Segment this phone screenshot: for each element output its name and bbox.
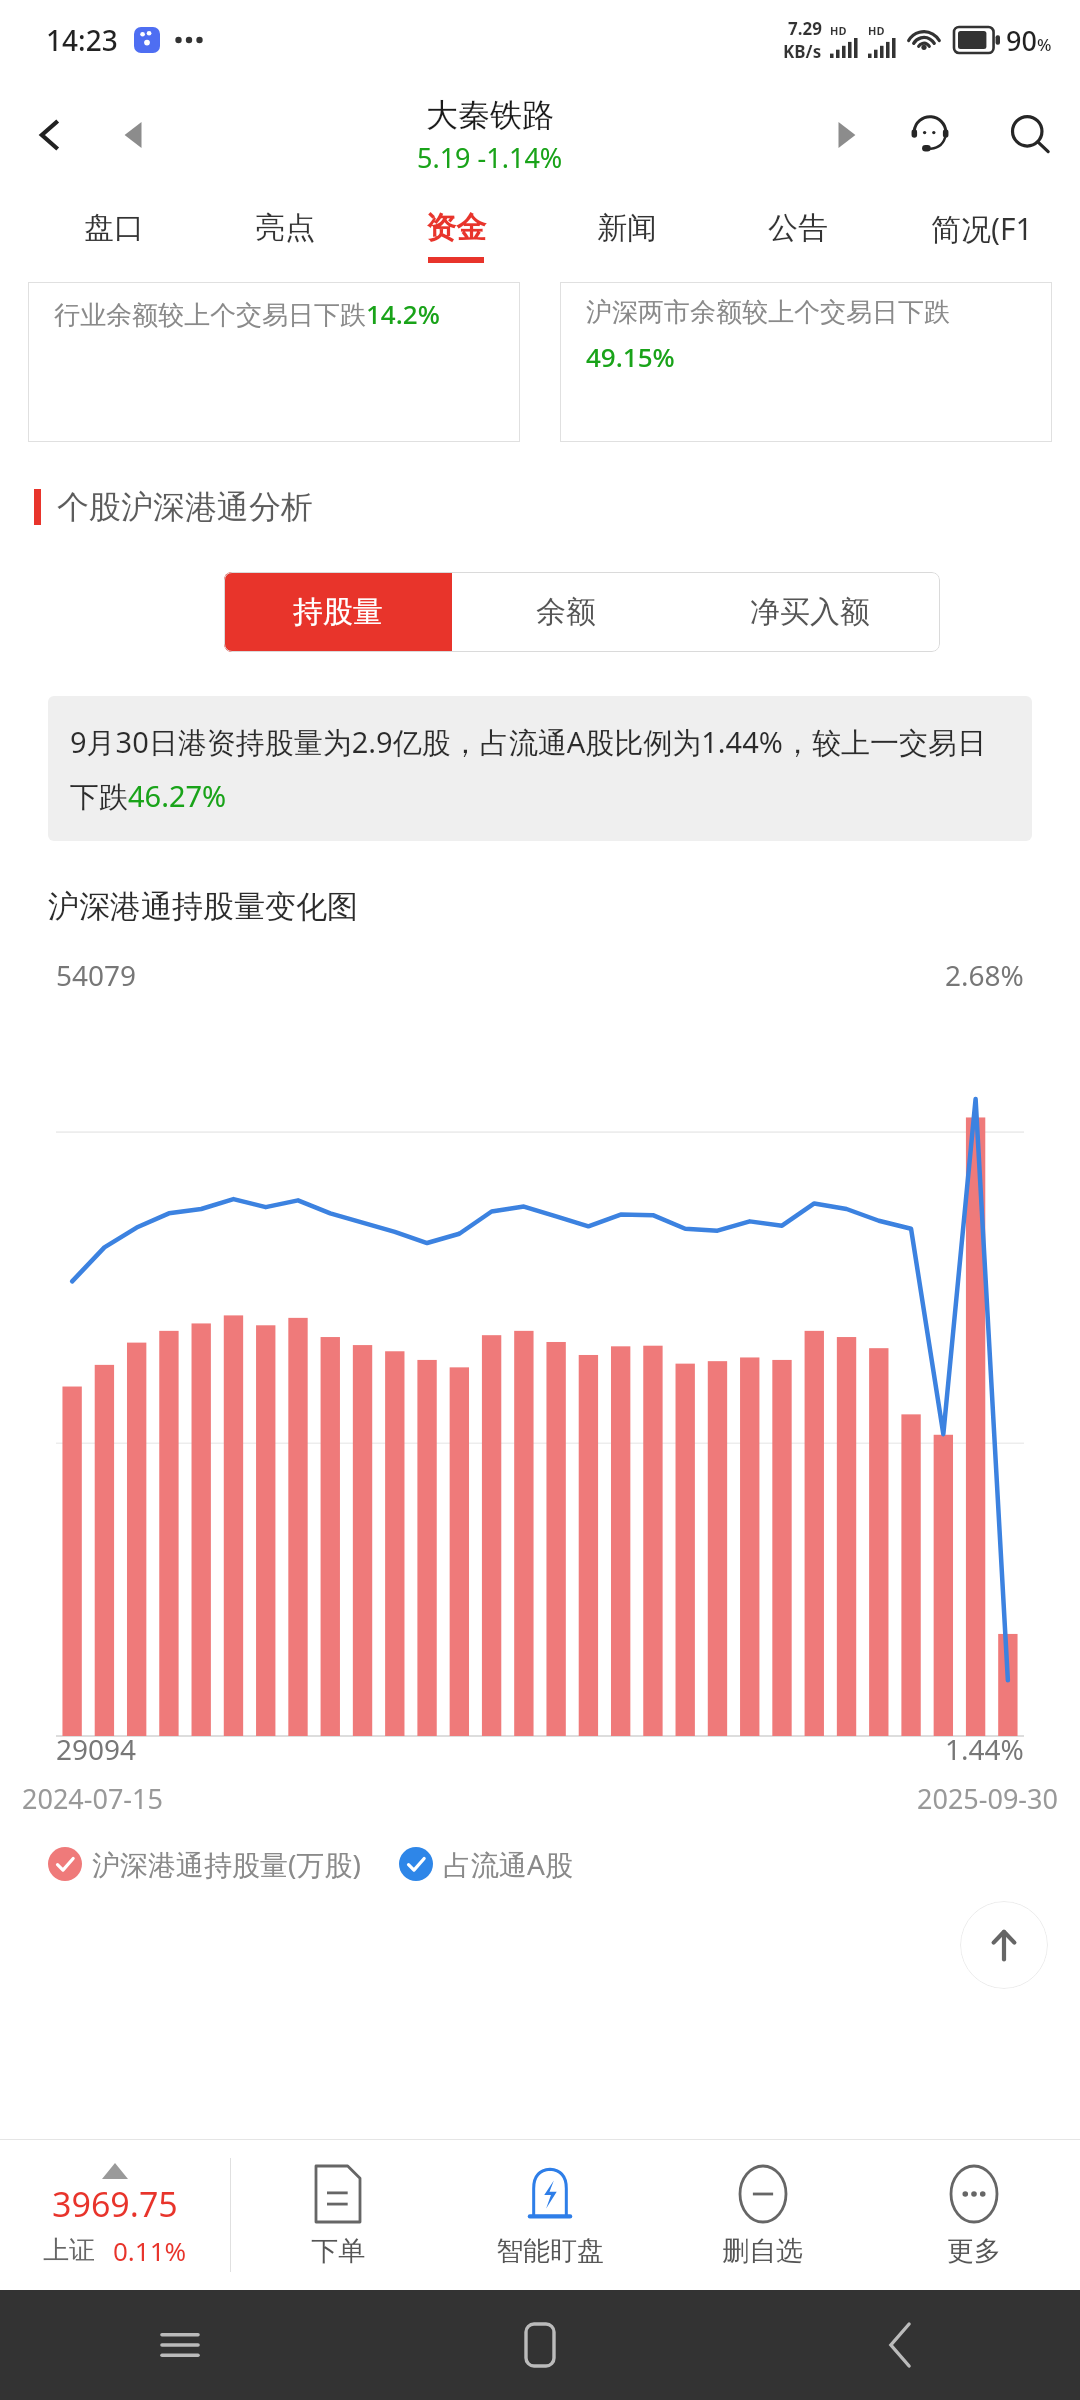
staticText: 资金 xyxy=(426,209,486,247)
staticText: 沪深两市余额较上个交易日下跌49.15% xyxy=(586,296,1038,374)
staticText: 亮点 xyxy=(255,209,315,247)
staticText: 2025-09-30 xyxy=(917,1780,1058,1817)
staticText: 2.68% xyxy=(945,956,1024,994)
staticText: HD xyxy=(868,23,885,38)
staticText: 新闻 xyxy=(597,209,657,247)
button[interactable]: Back xyxy=(0,80,100,190)
button[interactable]: 占流通A股 xyxy=(399,1845,573,1883)
staticText: 3969.75 xyxy=(52,2181,178,2227)
staticText: 14:23 xyxy=(46,21,118,59)
staticText: 1.44% xyxy=(945,1730,1024,1768)
button[interactable]: 资金 xyxy=(370,190,541,282)
staticText: 9月30日港资持股量为2.9亿股，占流通A股比例为1.44%，较上一交易日下跌4… xyxy=(70,722,1010,815)
staticText: 2024-07-15 xyxy=(22,1780,163,1817)
staticText: 智能盯盘 xyxy=(496,2234,604,2268)
staticText: 5.19 -1.14% xyxy=(417,139,563,176)
staticText: 大秦铁路 xyxy=(426,95,554,135)
button[interactable]: 沪深两市余额较上个交易日下跌49.15% xyxy=(560,282,1052,442)
staticText: 90 xyxy=(1006,22,1037,59)
button[interactable]: 亮点 xyxy=(199,190,370,282)
staticText: 0.11% xyxy=(113,2233,187,2268)
staticText: 更多 xyxy=(947,2234,1001,2268)
button[interactable]: 余额 xyxy=(452,572,679,652)
staticText: 净买入额 xyxy=(750,593,870,631)
button[interactable]: 下单 xyxy=(231,2140,444,2290)
button[interactable]: Next stock xyxy=(810,100,880,170)
staticText: 删自选 xyxy=(722,2234,803,2268)
button[interactable]: 3969.75 xyxy=(0,2140,230,2290)
button[interactable]: 智能盯盘 xyxy=(444,2140,656,2290)
staticText: 下单 xyxy=(311,2234,365,2268)
button[interactable]: Customer service xyxy=(880,80,980,190)
staticText: 沪深港通持股量变化图 xyxy=(48,887,358,926)
button[interactable]: Previous stock xyxy=(100,100,170,170)
button[interactable]: Scroll to top xyxy=(960,1901,1048,1989)
staticText: 持股量 xyxy=(293,593,383,631)
button[interactable]: Search xyxy=(980,80,1080,190)
button[interactable]: 净买入额 xyxy=(679,572,940,652)
staticText: 个股沪深港通分析 xyxy=(57,487,313,527)
staticText: 54079 xyxy=(56,956,137,994)
staticText: 行业余额较上个交易日下跌14.2% xyxy=(54,296,440,332)
button[interactable]: 更多 xyxy=(868,2140,1080,2290)
staticText: 29094 xyxy=(56,1730,137,1768)
staticText: 上证 xyxy=(43,2234,95,2267)
button[interactable]: 持股量 xyxy=(224,572,452,652)
button[interactable]: 新闻 xyxy=(541,190,712,282)
button[interactable]: 行业余额较上个交易日下跌14.2% xyxy=(28,282,520,442)
button[interactable]: 公告 xyxy=(712,190,883,282)
staticText: % xyxy=(1037,33,1052,56)
staticText: 公告 xyxy=(768,209,828,247)
staticText: 7.29 xyxy=(788,17,822,40)
button[interactable]: 删自选 xyxy=(656,2140,868,2290)
staticText: 盘口 xyxy=(84,209,144,247)
staticText: 沪深港通持股量(万股) xyxy=(92,1845,361,1883)
staticText: KB/s xyxy=(783,40,822,63)
staticText: 占流通A股 xyxy=(443,1845,573,1883)
button[interactable]: Home xyxy=(360,2290,720,2400)
button[interactable]: 简况(F1 xyxy=(883,190,1080,282)
staticText: 简况(F1 xyxy=(931,208,1033,249)
button[interactable]: Recent apps xyxy=(0,2290,360,2400)
staticText: HD xyxy=(830,23,847,38)
button[interactable]: 沪深港通持股量(万股) xyxy=(48,1845,361,1883)
staticText: 余额 xyxy=(536,593,596,631)
button[interactable]: 盘口 xyxy=(28,190,199,282)
button[interactable]: Back xyxy=(720,2290,1080,2400)
